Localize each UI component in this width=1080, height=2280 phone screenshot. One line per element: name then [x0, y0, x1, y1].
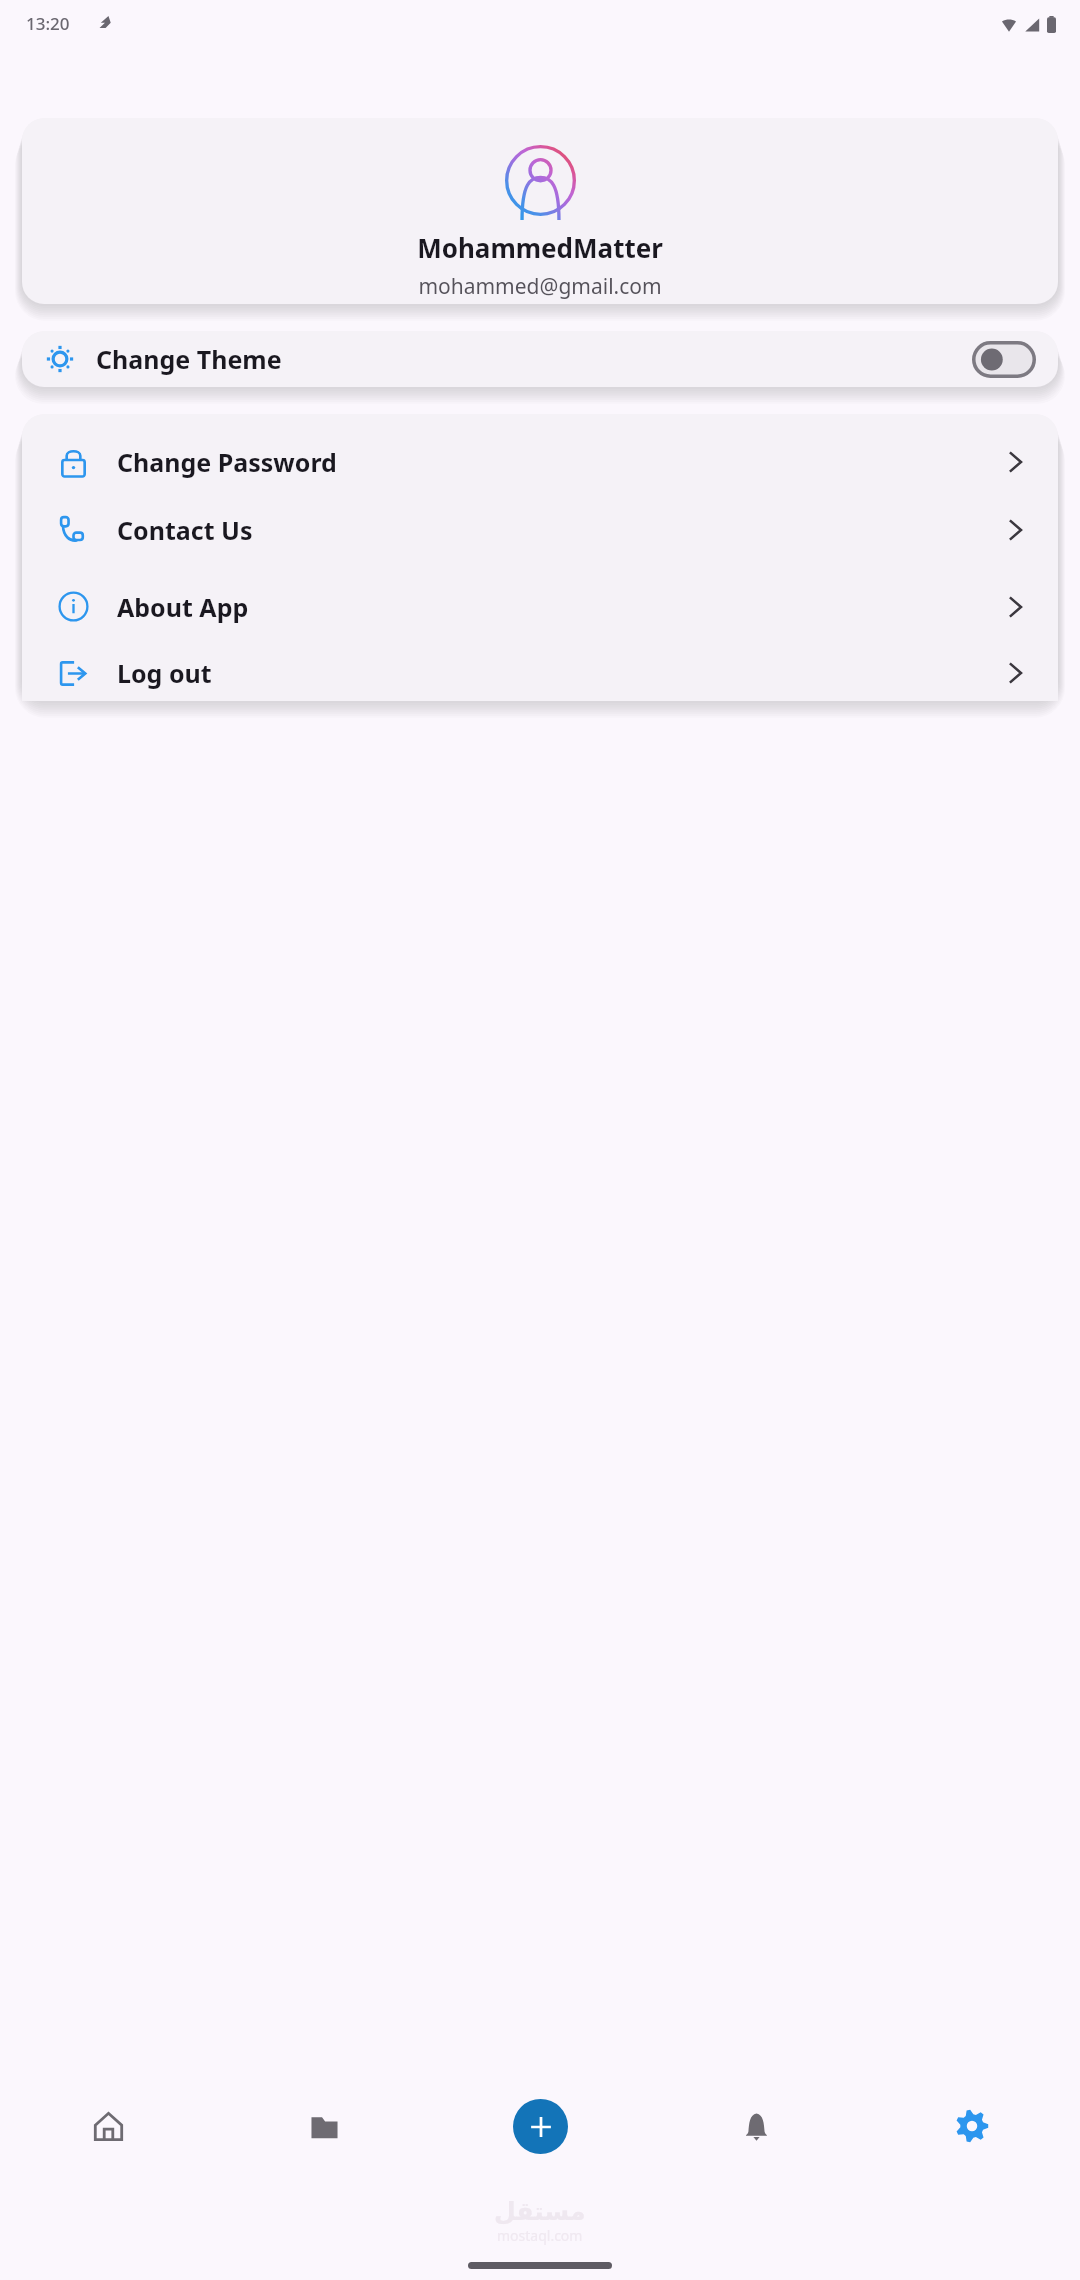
button[interactable]: Log out: [22, 645, 1058, 701]
staticText: About App: [117, 590, 249, 624]
staticText: Log out: [117, 656, 212, 690]
button[interactable]: Add: [513, 2099, 568, 2154]
staticText: 13:20: [26, 12, 70, 35]
staticText: Change Password: [117, 445, 337, 479]
button[interactable]: Change Theme: [22, 331, 1058, 387]
button[interactable]: Files: [216, 2060, 432, 2192]
staticText: MohammedMatter: [417, 230, 663, 265]
button[interactable]: Contact Us: [22, 491, 1058, 568]
staticText: mohammed@gmail.com: [418, 272, 662, 301]
staticText: Contact Us: [117, 513, 253, 547]
button[interactable]: Change Password: [22, 433, 1058, 491]
button[interactable]: Settings: [864, 2060, 1080, 2192]
button[interactable]: Notifications: [648, 2060, 864, 2192]
staticText: mostaql.com: [497, 2226, 583, 2245]
staticText: مستقل: [494, 2197, 586, 2226]
button[interactable]: MohammedMatter: [22, 118, 1058, 304]
button[interactable]: Home: [0, 2060, 216, 2192]
button[interactable]: About App: [22, 568, 1058, 645]
staticText: Change Theme: [96, 342, 282, 376]
